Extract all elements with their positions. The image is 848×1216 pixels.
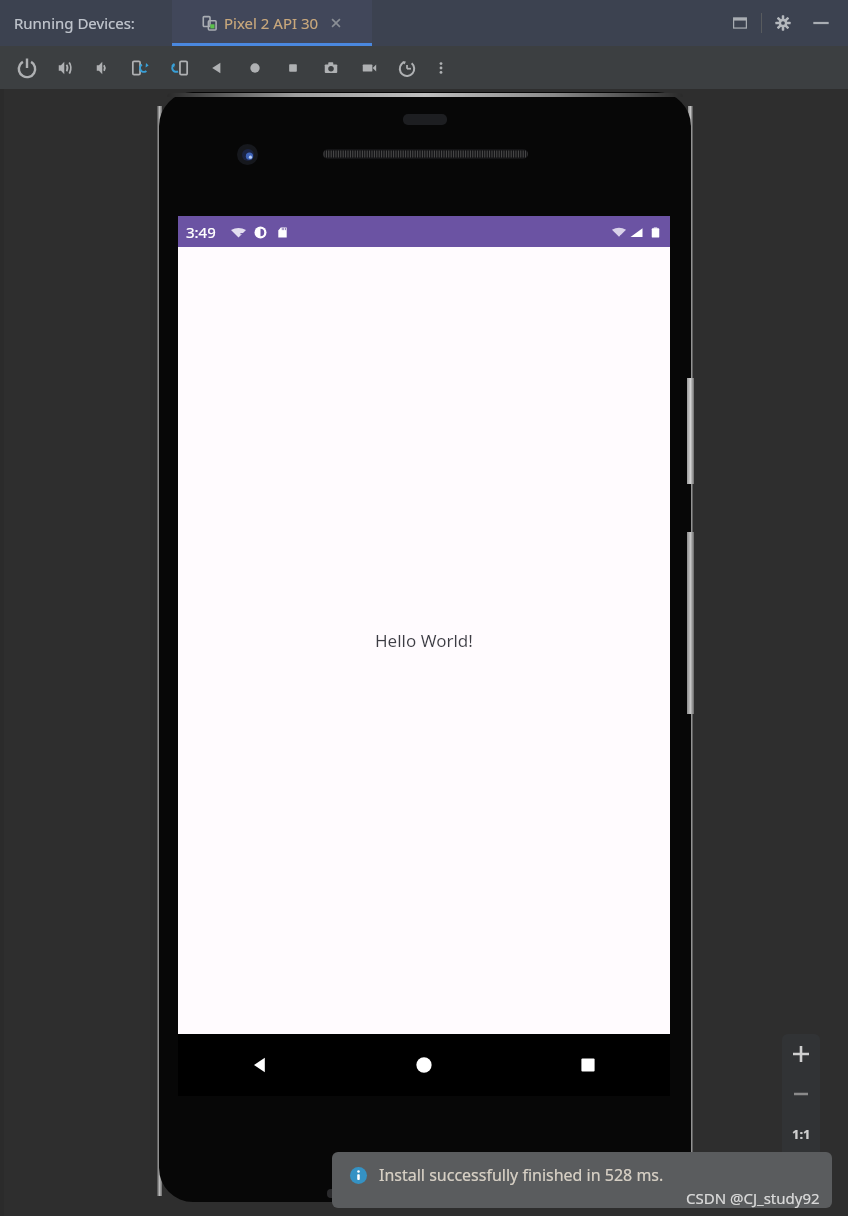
button[interactable]: Zoom out	[782, 1074, 820, 1114]
button[interactable]: Overview	[276, 51, 310, 85]
button[interactable]: Zoom in	[782, 1034, 820, 1074]
button[interactable]: Actual size	[782, 1114, 820, 1154]
button[interactable]: Rotate left	[124, 51, 158, 85]
staticText: Hello World!	[375, 629, 473, 652]
staticText: Pixel 2 API 30	[224, 13, 319, 33]
button[interactable]: Record screen	[352, 51, 386, 85]
button[interactable]: Window layout	[725, 8, 755, 38]
button[interactable]: Volume up	[48, 51, 82, 85]
button[interactable]: Home	[238, 51, 272, 85]
button[interactable]: Recent apps	[506, 1034, 670, 1096]
staticText: 1:1	[792, 1125, 811, 1143]
staticText: ?	[240, 230, 244, 241]
button[interactable]: Settings	[768, 8, 798, 38]
button[interactable]: More options	[426, 53, 456, 83]
button[interactable]: Minimize	[806, 8, 836, 38]
staticText: CSDN @CJ_study92	[686, 1188, 820, 1208]
button[interactable]: Back	[200, 51, 234, 85]
button[interactable]: Close tab	[329, 16, 343, 30]
button[interactable]: History	[390, 51, 424, 85]
button[interactable]: Rotate right	[162, 51, 196, 85]
button[interactable]: Home	[342, 1034, 506, 1096]
staticText: x	[620, 231, 625, 242]
staticText: Install successfully finished in 528 ms.	[379, 1164, 664, 1186]
button[interactable]: Power	[10, 51, 44, 85]
staticText: Running Devices:	[14, 13, 135, 33]
button[interactable]: Screenshot	[314, 51, 348, 85]
button[interactable]: Back	[178, 1034, 342, 1096]
button[interactable]: Pixel 2 API 30	[172, 0, 372, 46]
button[interactable]: Volume down	[86, 51, 120, 85]
staticText: 3:49	[186, 222, 216, 242]
